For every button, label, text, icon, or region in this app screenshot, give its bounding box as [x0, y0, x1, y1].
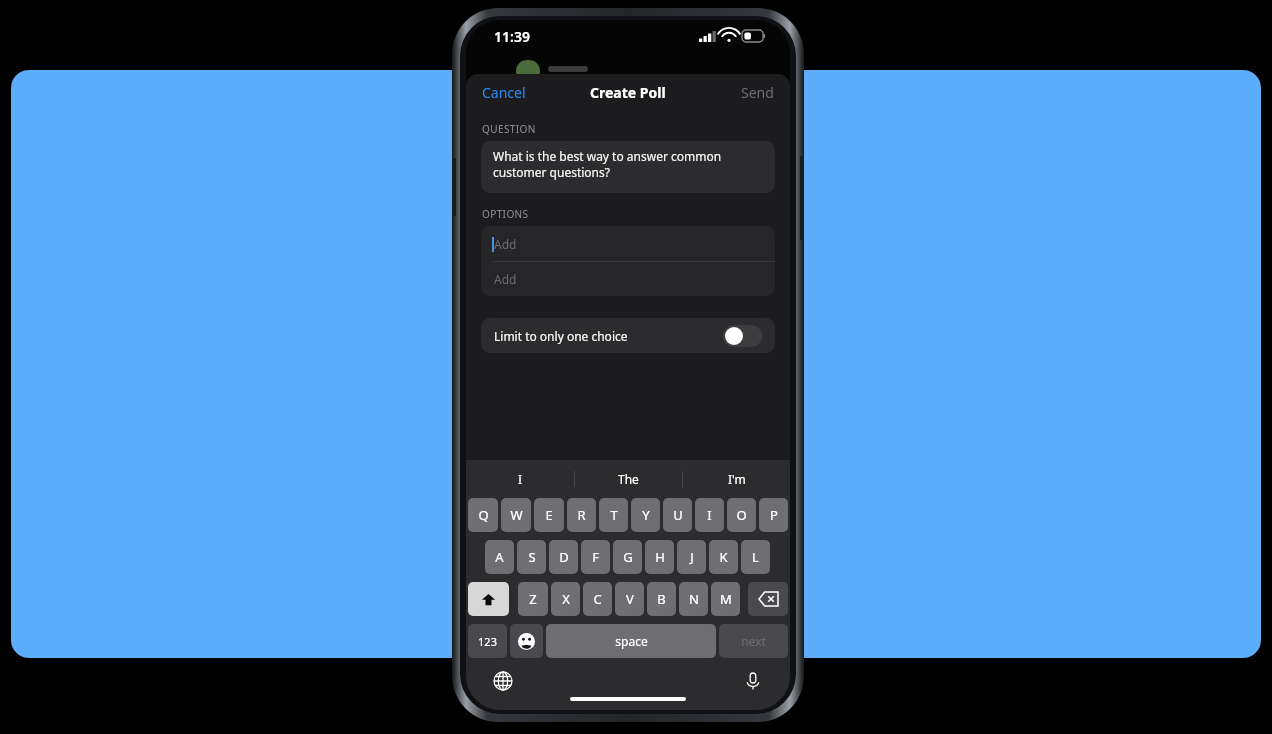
staticText: Cancel	[482, 83, 526, 102]
button[interactable]: B	[647, 582, 676, 616]
staticText: G	[623, 548, 633, 566]
staticText: Send	[741, 83, 774, 102]
staticText: Z	[529, 590, 537, 608]
button[interactable]: N	[679, 582, 708, 616]
staticText: K	[719, 548, 728, 566]
button[interactable]: Z	[518, 582, 548, 616]
staticText: W	[510, 506, 523, 524]
staticText: R	[577, 506, 586, 524]
staticText: J	[690, 548, 694, 566]
button[interactable]: J	[677, 540, 706, 574]
button[interactable]: Dictation	[738, 666, 768, 696]
button[interactable]: O	[727, 498, 756, 532]
button[interactable]: next	[719, 624, 788, 658]
staticText: Add	[494, 236, 517, 252]
button[interactable]: Add	[481, 262, 775, 296]
staticText: Y	[642, 506, 650, 524]
button[interactable]: I	[466, 460, 574, 498]
staticText: OPTIONS	[482, 207, 529, 221]
staticText: QUESTION	[482, 122, 536, 136]
staticText: L	[752, 548, 759, 566]
staticText: S	[528, 548, 536, 566]
button[interactable]: Emoji	[510, 624, 543, 658]
button[interactable]: D	[549, 540, 578, 574]
staticText: D	[559, 548, 569, 566]
staticText: F	[592, 548, 599, 566]
button[interactable]: K	[709, 540, 738, 574]
button[interactable]: Limit to only one choice	[481, 318, 775, 353]
button[interactable]: Add	[481, 226, 775, 261]
staticText: 11:39	[494, 27, 530, 46]
button[interactable]: H	[645, 540, 674, 574]
staticText: U	[673, 506, 683, 524]
staticText: V	[626, 590, 634, 608]
staticText: Add	[494, 271, 517, 287]
button[interactable]: L	[741, 540, 770, 574]
button[interactable]: Shift	[468, 582, 509, 616]
button[interactable]: Y	[631, 498, 660, 532]
button[interactable]: space	[546, 624, 716, 658]
staticText: P	[770, 506, 778, 524]
staticText: Limit to only one choice	[494, 328, 628, 344]
staticText: B	[657, 590, 666, 608]
button[interactable]: Change keyboard language	[488, 666, 518, 696]
button[interactable]: Send	[731, 77, 790, 108]
staticText: I	[518, 471, 523, 487]
staticText: Q	[478, 506, 489, 524]
button[interactable]: G	[613, 540, 642, 574]
staticText: M	[720, 590, 732, 608]
button[interactable]: T	[599, 498, 628, 532]
button[interactable]: R	[567, 498, 596, 532]
staticText: I	[707, 506, 712, 524]
button[interactable]: V	[615, 582, 644, 616]
button[interactable]: C	[583, 582, 612, 616]
staticText: The	[618, 471, 639, 487]
staticText: E	[545, 506, 553, 524]
button[interactable]: The	[575, 460, 682, 498]
staticText: 123	[478, 634, 497, 649]
button[interactable]: What is the best way to answer common cu…	[481, 141, 775, 193]
button[interactable]: X	[551, 582, 580, 616]
button[interactable]: A	[485, 540, 514, 574]
button[interactable]: Cancel	[466, 77, 536, 108]
button[interactable]: Backspace	[748, 582, 788, 616]
button[interactable]: Limit to only one choice toggle	[723, 325, 762, 347]
staticText: C	[593, 590, 602, 608]
staticText: What is the best way to answer common cu…	[493, 148, 763, 181]
staticText: H	[655, 548, 665, 566]
button[interactable]: I	[695, 498, 724, 532]
staticText: A	[495, 548, 504, 566]
button[interactable]: P	[759, 498, 788, 532]
staticText: T	[610, 506, 618, 524]
button[interactable]: Q	[468, 498, 498, 532]
staticText: Create Poll	[590, 83, 666, 102]
staticText: space	[615, 633, 648, 649]
button[interactable]: I'm	[683, 460, 790, 498]
button[interactable]: U	[663, 498, 692, 532]
button[interactable]: M	[711, 582, 740, 616]
staticText: X	[562, 590, 570, 608]
button[interactable]: S	[517, 540, 546, 574]
button[interactable]: W	[501, 498, 531, 532]
staticText: next	[741, 633, 766, 649]
button[interactable]: F	[581, 540, 610, 574]
staticText: I'm	[728, 471, 746, 487]
staticText: O	[736, 506, 747, 524]
button[interactable]: 123	[468, 624, 507, 658]
button[interactable]: E	[534, 498, 564, 532]
staticText: N	[689, 590, 699, 608]
